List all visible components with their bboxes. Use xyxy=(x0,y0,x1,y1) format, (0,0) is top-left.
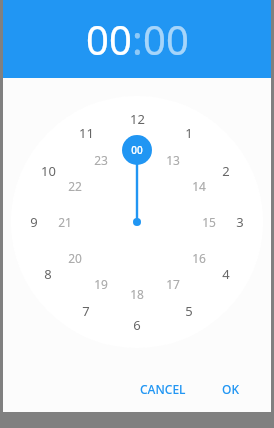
staticText: 22 xyxy=(68,178,82,194)
staticText: 20 xyxy=(68,250,82,266)
button[interactable]: 00 xyxy=(86,12,132,66)
staticText: 5 xyxy=(185,302,193,320)
staticText: 13 xyxy=(166,152,180,168)
staticText: 3 xyxy=(236,213,244,231)
staticText: OK xyxy=(222,381,239,397)
staticText: 6 xyxy=(133,316,141,334)
staticText: 7 xyxy=(82,302,90,320)
button[interactable]: OK xyxy=(214,375,247,403)
staticText: 00 xyxy=(131,143,143,157)
staticText: 21 xyxy=(58,214,72,230)
staticText: 00 xyxy=(86,12,132,66)
staticText: CANCEL xyxy=(140,381,186,397)
button[interactable]: CANCEL xyxy=(132,375,194,403)
staticText: 11 xyxy=(79,124,94,142)
staticText: 16 xyxy=(192,250,206,266)
button[interactable]: Clock face, hour selection xyxy=(3,78,271,412)
staticText: 19 xyxy=(94,276,108,292)
staticText: 00 xyxy=(143,12,189,66)
staticText: 1 xyxy=(185,124,193,142)
staticText: 15 xyxy=(202,214,216,230)
staticText: 14 xyxy=(192,178,206,194)
staticText: 18 xyxy=(130,286,144,302)
staticText: 4 xyxy=(222,265,230,283)
staticText: : xyxy=(132,12,143,66)
staticText: 17 xyxy=(166,276,180,292)
staticText: 8 xyxy=(44,265,52,283)
staticText: 2 xyxy=(222,162,230,180)
button[interactable]: 00 xyxy=(143,12,189,66)
staticText: 12 xyxy=(130,110,145,128)
staticText: 10 xyxy=(41,162,56,180)
staticText: 23 xyxy=(94,152,108,168)
staticText: 9 xyxy=(30,213,38,231)
